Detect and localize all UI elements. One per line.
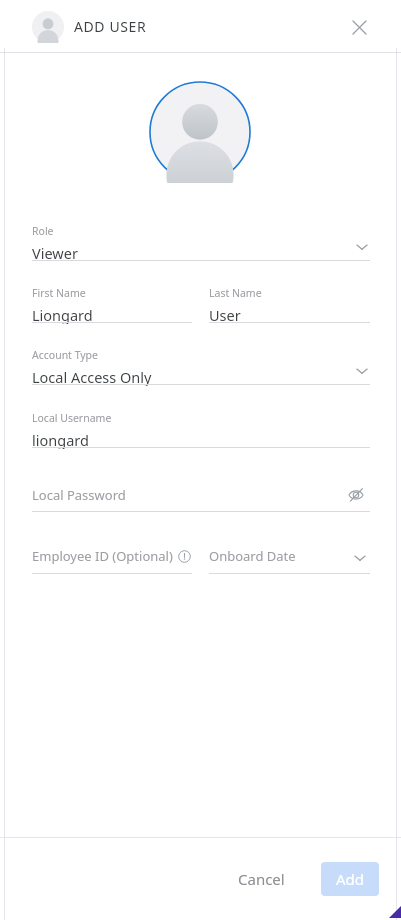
button[interactable]: Add	[321, 862, 379, 896]
staticText: Local Access Only	[32, 367, 152, 386]
staticText: Employee ID (Optional)	[32, 547, 173, 565]
staticText: Last Name	[209, 286, 262, 300]
staticText: Account Type	[32, 348, 99, 362]
button[interactable]: Onboard Date	[209, 547, 370, 565]
button[interactable]: Role	[32, 224, 370, 262]
button[interactable]: Cancel	[224, 861, 299, 897]
button[interactable]: Employee ID (Optional)	[32, 547, 192, 565]
staticText: Add	[336, 869, 365, 889]
button[interactable]: Account Type	[32, 348, 370, 386]
staticText: Local Username	[32, 411, 112, 425]
staticText: User	[209, 305, 241, 324]
staticText: First Name	[32, 286, 86, 300]
staticText: liongard	[32, 430, 89, 449]
staticText: Cancel	[238, 869, 285, 889]
button[interactable]: First Name	[32, 286, 192, 324]
staticText: ADD USER	[74, 17, 147, 36]
button[interactable]: Close	[337, 5, 381, 49]
staticText: Liongard	[32, 305, 93, 324]
button[interactable]: Show password	[342, 481, 370, 509]
staticText: Viewer	[32, 243, 78, 262]
staticText: Role	[32, 224, 54, 238]
staticText: Onboard Date	[209, 547, 296, 565]
button[interactable]: Last Name	[209, 286, 370, 324]
button[interactable]: Local Username	[32, 411, 370, 449]
staticText: Local Password	[32, 486, 126, 504]
